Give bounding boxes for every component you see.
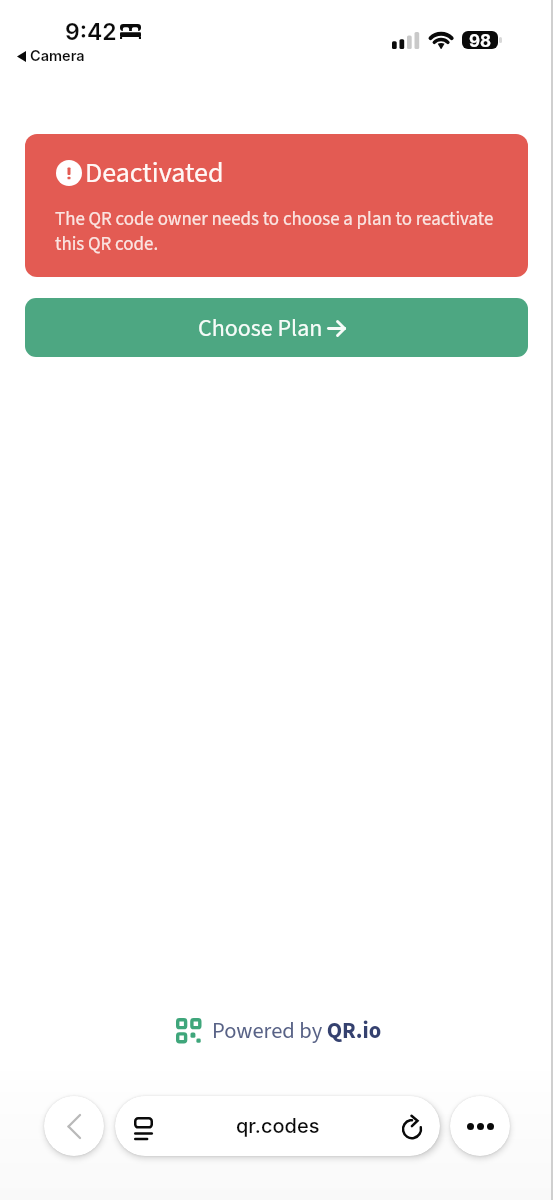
button[interactable]: Reload — [391, 1105, 433, 1147]
staticText: 9:42 — [65, 18, 117, 46]
staticText: 98 — [469, 31, 492, 49]
button[interactable]: Back — [44, 1096, 104, 1156]
staticText: The QR code owner needs to choose a plan… — [55, 206, 515, 258]
staticText: Powered by QR.io — [212, 1015, 382, 1047]
staticText: Choose Plan — [198, 311, 323, 345]
button[interactable]: Choose Plan — [25, 298, 528, 357]
button[interactable]: More — [450, 1096, 510, 1156]
button[interactable]: Page settings — [122, 1107, 164, 1149]
staticText: qr.codes — [236, 1114, 320, 1138]
button[interactable]: Back to Camera — [17, 47, 85, 65]
staticText: Camera — [30, 47, 85, 65]
staticText: Deactivated — [85, 153, 224, 193]
button[interactable]: qr.codes — [115, 1096, 440, 1156]
